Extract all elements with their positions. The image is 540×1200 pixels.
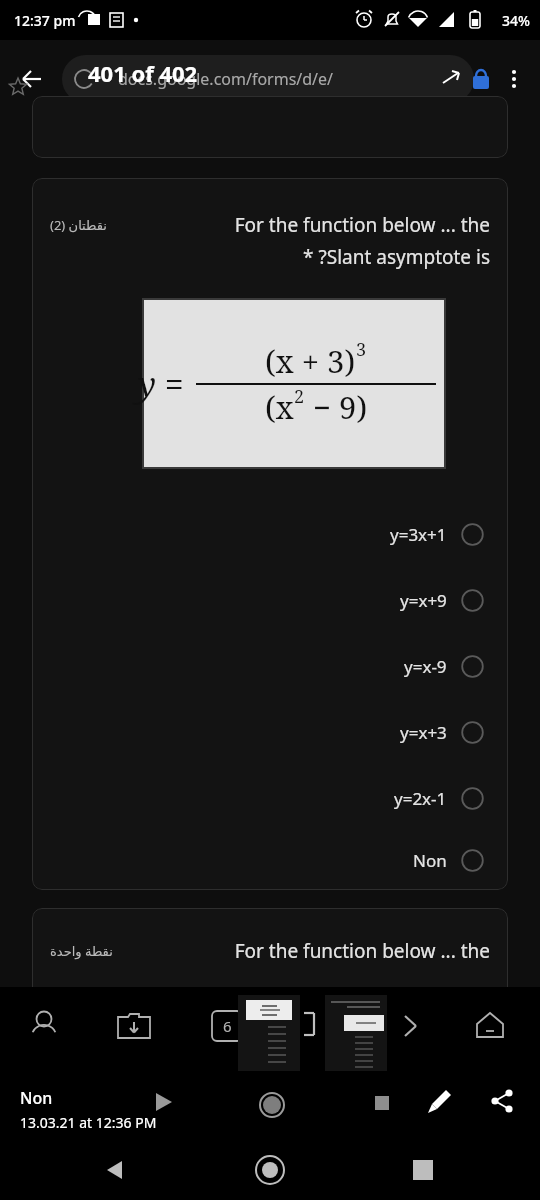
- button[interactable]: Forward: [392, 1007, 430, 1045]
- staticText: (x + 3): [265, 340, 356, 382]
- button[interactable]: Screenshot preview: [325, 995, 387, 1071]
- button[interactable]: Record: [254, 1087, 290, 1123]
- staticText: y=3x+1: [390, 523, 447, 546]
- button[interactable]: Play: [148, 1089, 182, 1123]
- button[interactable]: Screenshot preview: [238, 995, 300, 1071]
- staticText: (x: [265, 386, 294, 428]
- staticText: 2: [294, 384, 305, 409]
- button[interactable]: y=2x-1: [32, 765, 508, 831]
- staticText: y =: [138, 361, 184, 407]
- button[interactable]: Downloads: [112, 1005, 156, 1049]
- staticText: y=2x-1: [394, 787, 447, 810]
- staticText: 12:37 pm: [14, 11, 76, 30]
- button[interactable]: y=x+9: [32, 567, 508, 633]
- staticText: 13.03.21 at 12:36 PM: [20, 1113, 157, 1132]
- staticText: * ?Slant asymptote is: [117, 244, 490, 270]
- staticText: 6: [223, 1016, 232, 1036]
- button[interactable]: Share: [486, 1087, 520, 1121]
- staticText: 3: [356, 337, 367, 362]
- button[interactable]: docs.google.com/forms/d/e/: [62, 55, 474, 103]
- button[interactable]: [32, 96, 508, 158]
- button[interactable]: Back: [8, 55, 56, 103]
- button[interactable]: Account: [22, 1005, 66, 1049]
- staticText: − 9): [305, 386, 368, 428]
- button[interactable]: Tabs: [208, 1007, 246, 1045]
- staticText: For the function below ... the: [123, 938, 490, 964]
- button[interactable]: Back: [96, 1150, 136, 1190]
- button[interactable]: Stop: [370, 1091, 398, 1119]
- staticText: y=x-9: [404, 655, 447, 678]
- staticText: y=x+9: [400, 589, 447, 612]
- staticText: docs.google.com/forms/d/e/: [118, 68, 334, 90]
- staticText: نقطة واحدة: [50, 942, 113, 960]
- staticText: نقطتان (2): [50, 216, 107, 234]
- staticText: Non: [413, 849, 447, 872]
- button[interactable]: Site information: [468, 65, 496, 93]
- button[interactable]: Home: [248, 1148, 292, 1192]
- staticText: 401 of 402: [88, 58, 198, 88]
- staticText: Non: [20, 1087, 53, 1109]
- button[interactable]: y=x+3: [32, 699, 508, 765]
- button[interactable]: More options: [496, 61, 532, 97]
- button[interactable]: y=x-9: [32, 633, 508, 699]
- button[interactable]: Recent apps: [406, 1153, 440, 1187]
- button[interactable]: Non: [32, 831, 508, 890]
- button[interactable]: Markup: [424, 1087, 458, 1121]
- button[interactable]: Home: [472, 1007, 512, 1047]
- button[interactable]: y=3x+1: [32, 501, 508, 567]
- button[interactable]: نقطتان (2): [32, 178, 508, 890]
- staticText: For the function below ... the: [117, 212, 490, 238]
- staticText: 34%: [502, 11, 530, 30]
- staticText: y=x+3: [400, 721, 447, 744]
- button[interactable]: نقطة واحدة: [32, 908, 508, 998]
